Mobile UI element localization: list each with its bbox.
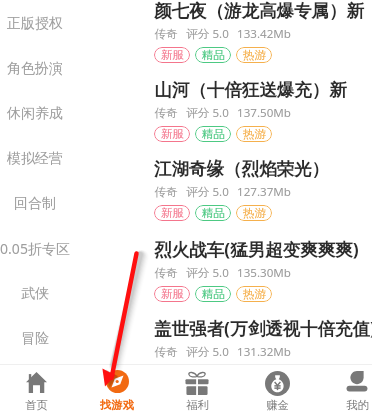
staticText: 127.37Mb (237, 184, 291, 200)
staticText: 精品 (202, 287, 225, 301)
staticText: 传奇 (154, 27, 178, 42)
button[interactable]: 武侠 (0, 271, 100, 316)
button[interactable]: 烈火战车(猛男超变爽爽爽) (154, 236, 372, 315)
staticText: 传奇 (154, 106, 178, 121)
staticText: 赚金 (266, 398, 289, 412)
staticText: 颜七夜（游龙高爆专属）新 (154, 0, 364, 22)
staticText: 评分 5.0 (186, 184, 229, 200)
staticText: 评分 5.0 (186, 26, 229, 42)
staticText: 精品 (202, 127, 225, 141)
staticText: 评分 5.0 (186, 105, 229, 121)
staticText: 新服 (161, 206, 184, 220)
staticText: 江湖奇缘（烈焰荣光） (154, 158, 329, 180)
staticText: 模拟经营 (7, 150, 63, 168)
button[interactable]: 首页 (0, 364, 73, 415)
staticText: 冒险 (21, 330, 49, 348)
staticText: 传奇 (154, 345, 178, 360)
staticText: 0.05折专区 (0, 239, 70, 258)
staticText: 131.32Mb (237, 344, 291, 360)
button[interactable]: 模拟经营 (0, 136, 100, 181)
staticText: 传奇 (154, 185, 178, 200)
staticText: 新服 (161, 127, 184, 141)
button[interactable]: 我的 (320, 364, 372, 415)
staticText: 回合制 (14, 195, 56, 213)
button[interactable]: 休闲养成 (0, 91, 100, 136)
button[interactable]: 回合制 (0, 181, 100, 226)
staticText: 福利 (186, 398, 209, 412)
button[interactable]: 江湖奇缘（烈焰荣光） (154, 157, 372, 236)
staticText: 精品 (202, 206, 225, 220)
staticText: 找游戏 (100, 398, 134, 412)
staticText: 评分 5.0 (186, 265, 229, 281)
button[interactable]: 赚金 (240, 364, 314, 415)
button[interactable]: 福利 (160, 364, 234, 415)
staticText: 角色扮演 (7, 60, 63, 78)
staticText: 135.30Mb (237, 265, 291, 281)
staticText: 137.50Mb (237, 105, 291, 121)
staticText: 烈火战车(猛男超变爽爽爽) (154, 237, 359, 261)
staticText: 山河（十倍狂送爆充）新 (154, 79, 347, 101)
staticText: 武侠 (21, 285, 49, 303)
button[interactable]: 冒险 (0, 316, 100, 361)
button[interactable]: 角色扮演 (0, 46, 100, 91)
staticText: 热游 (243, 287, 266, 301)
staticText: 热游 (243, 206, 266, 220)
staticText: 休闲养成 (7, 105, 63, 123)
button[interactable]: 山河（十倍狂送爆充）新 (154, 78, 372, 157)
button[interactable]: 颜七夜（游龙高爆专属）新 (154, 0, 372, 78)
staticText: 传奇 (154, 266, 178, 281)
staticText: 首页 (25, 398, 48, 412)
staticText: 热游 (243, 48, 266, 62)
button[interactable]: 盖世强者(万剑透视十倍充值) (154, 315, 372, 394)
staticText: 精品 (202, 48, 225, 62)
staticText: 新服 (161, 48, 184, 62)
staticText: 正版授权 (7, 15, 63, 33)
button[interactable]: 0.05折专区 (0, 226, 100, 271)
button[interactable]: 正版授权 (0, 1, 100, 46)
staticText: 盖世强者(万剑透视十倍充值) (154, 316, 372, 340)
button[interactable]: 找游戏 (80, 364, 154, 415)
staticText: 精品 (202, 366, 225, 380)
staticText: 热游 (243, 127, 266, 141)
staticText: 133.42Mb (237, 26, 291, 42)
staticText: 新服 (161, 287, 184, 301)
staticText: 我的 (346, 398, 369, 412)
staticText: 评分 5.0 (186, 344, 229, 360)
